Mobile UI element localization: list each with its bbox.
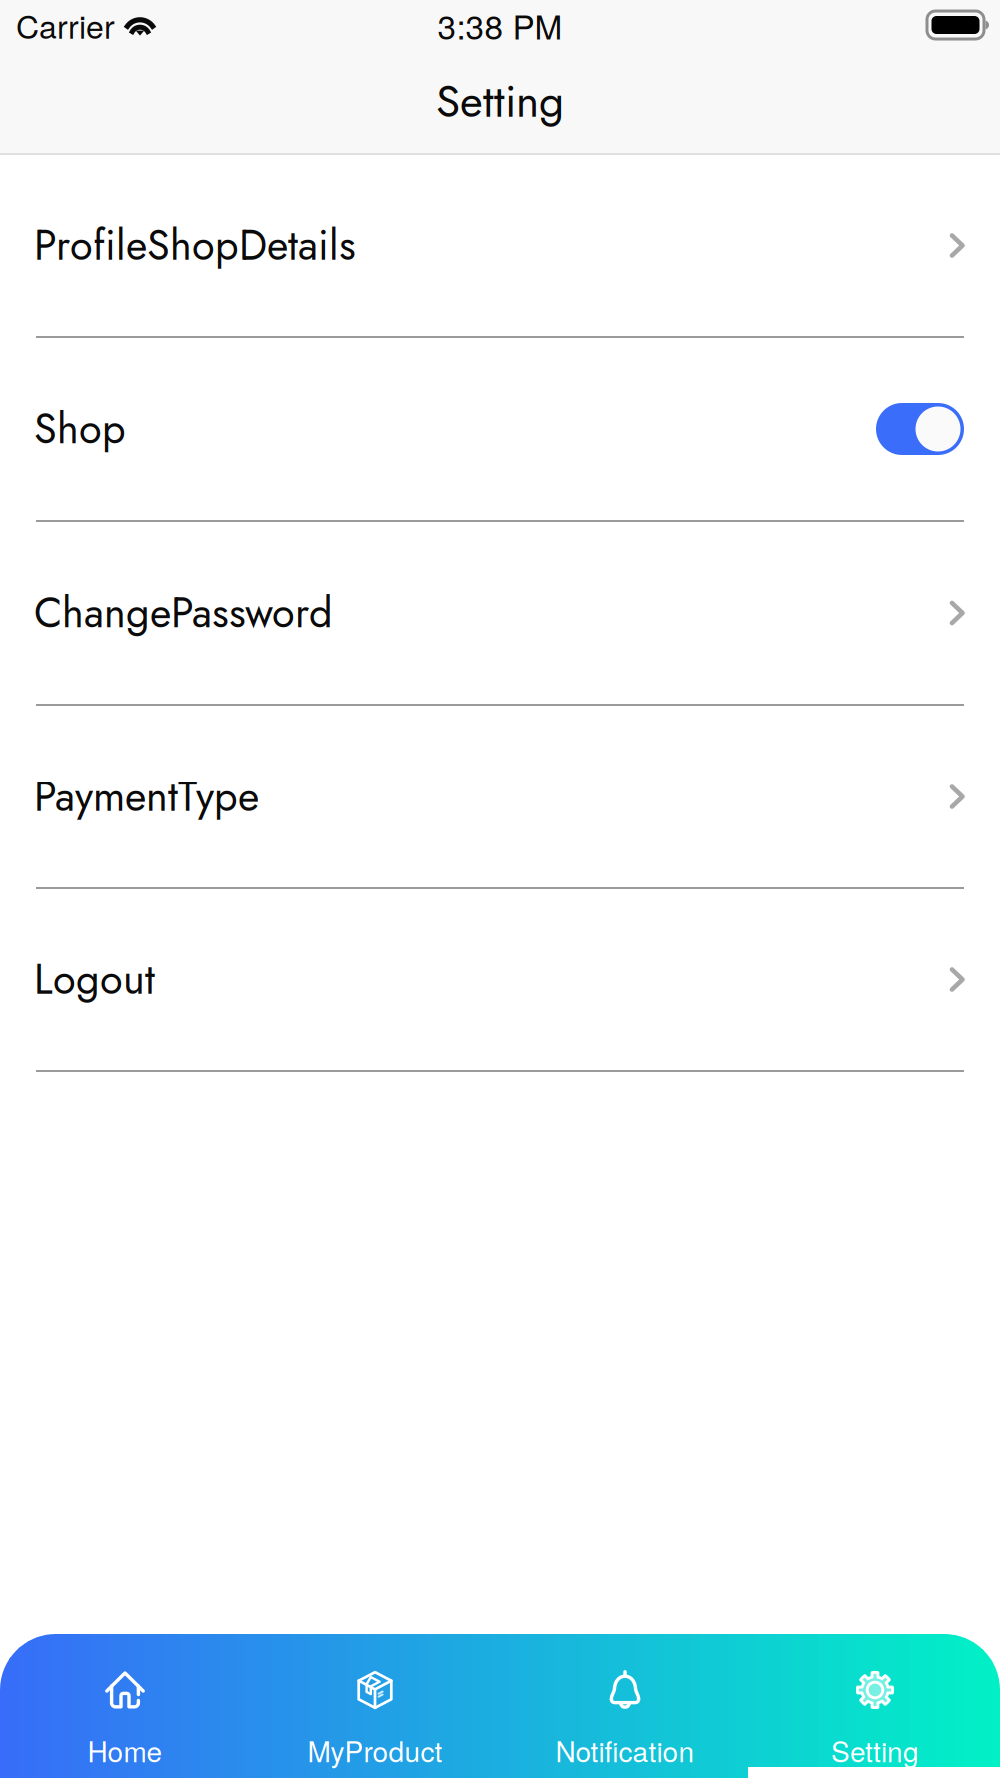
button[interactable]: Home — [0, 1634, 250, 1778]
staticText: MyProduct — [307, 1730, 442, 1770]
button[interactable]: MyProduct — [250, 1634, 500, 1778]
staticText: ChangePassword — [34, 583, 333, 643]
button[interactable]: Shop — [0, 338, 1000, 522]
staticText: Setting — [831, 1730, 919, 1770]
staticText: Shop — [34, 399, 126, 459]
button[interactable]: ProfileShopDetails — [0, 155, 1000, 338]
button[interactable]: Notification — [500, 1634, 750, 1778]
button[interactable]: Logout — [0, 889, 1000, 1072]
button[interactable]: Setting — [750, 1634, 1000, 1778]
button[interactable]: PaymentType — [0, 706, 1000, 889]
staticText: Notification — [555, 1730, 694, 1770]
staticText: Carrier — [16, 2, 115, 48]
button[interactable]: ChangePassword — [0, 522, 1000, 706]
staticText: Home — [87, 1730, 162, 1770]
staticText: Setting — [436, 70, 564, 133]
staticText: Logout — [34, 950, 155, 1009]
staticText: PaymentType — [34, 767, 259, 826]
staticText: 3:38 PM — [437, 1, 562, 49]
staticText: ProfileShopDetails — [34, 216, 356, 275]
